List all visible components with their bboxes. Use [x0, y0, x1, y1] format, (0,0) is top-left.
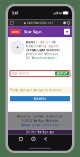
button[interactable]: Menu [64, 29, 70, 35]
staticText: CRYSTAL CLEAR moment [25, 48, 59, 52]
button[interactable]: Get the Star Sign app [8, 130, 72, 134]
staticText: 21 Apr–21 May [35, 40, 55, 44]
button[interactable]: Back [44, 137, 47, 140]
staticText: LOGO [12, 30, 19, 33]
staticText: Please add your star sign to continue [10, 88, 62, 92]
staticText: Email address [12, 72, 29, 75]
button[interactable]: Page settings [10, 21, 14, 25]
staticText: SIGN UP [56, 72, 67, 75]
staticText: © 2024 Star Sign Media Ltd [21, 119, 58, 123]
staticText: Today's reading: a quiet [25, 44, 58, 48]
button[interactable]: Tabs [19, 137, 22, 140]
staticText: 9:41 [11, 10, 18, 15]
button[interactable]: Refresh [63, 21, 66, 24]
staticText: About us · Contact · Terms of use [17, 115, 63, 118]
staticText: mobilewebsite.net [27, 21, 53, 25]
button[interactable]: More [67, 21, 70, 24]
button[interactable]: SIGN UP [55, 71, 69, 76]
staticText: arrives in the afternoon. [25, 52, 59, 56]
staticText: Star Sign [24, 29, 42, 34]
button[interactable]: Reload [32, 137, 35, 141]
staticText: Manage cookie preferences [21, 123, 59, 127]
staticText: Subscribe [33, 97, 46, 100]
staticText: Full Taurus horoscope › [25, 56, 57, 60]
staticText: Taurus [25, 40, 34, 44]
button[interactable]: Subscribe [10, 96, 70, 101]
staticText: Get the Star Sign app [25, 130, 54, 134]
